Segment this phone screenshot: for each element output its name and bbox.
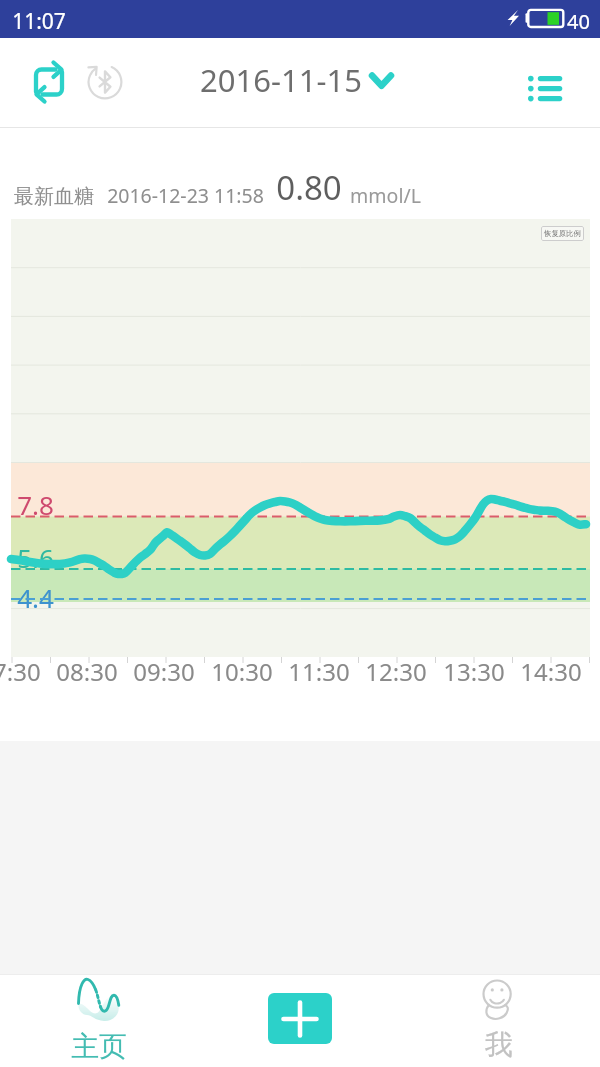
button[interactable]: Bluetooth [81, 58, 129, 106]
staticText: 我 [485, 1027, 513, 1062]
button[interactable]: Add record [240, 975, 360, 1067]
button[interactable]: 主页 [40, 975, 160, 1067]
staticText: 2016-11-15 [200, 59, 362, 101]
staticText: 40 [567, 8, 590, 35]
staticText: 0.80 [276, 165, 342, 210]
button[interactable]: 恢复原比例 [541, 226, 584, 241]
staticText: 5.6 [17, 540, 54, 575]
staticText: 4.4 [17, 580, 54, 615]
staticText: 08:30 [56, 655, 118, 688]
staticText: mmol/L [350, 182, 421, 209]
staticText: 13:30 [443, 655, 505, 688]
staticText: 11:30 [288, 655, 350, 688]
staticText: 11:07 [12, 7, 66, 36]
staticText: 最新血糖 [14, 184, 94, 209]
button[interactable]: List view [528, 76, 576, 124]
button[interactable]: 我 [440, 975, 560, 1067]
staticText: 7.8 [17, 487, 54, 522]
staticText: 主页 [71, 1029, 127, 1064]
staticText: 14:30 [520, 655, 582, 688]
staticText: 恢复原比例 [544, 229, 581, 238]
staticText: 12:30 [365, 655, 427, 688]
staticText: 07:30 [0, 655, 41, 688]
button[interactable]: Sync [25, 58, 73, 106]
staticText: 10:30 [211, 655, 273, 688]
button[interactable]: 2016-11-15 [200, 53, 393, 107]
staticText: 2016-12-23 11:58 [107, 182, 264, 209]
staticText: 09:30 [133, 655, 195, 688]
